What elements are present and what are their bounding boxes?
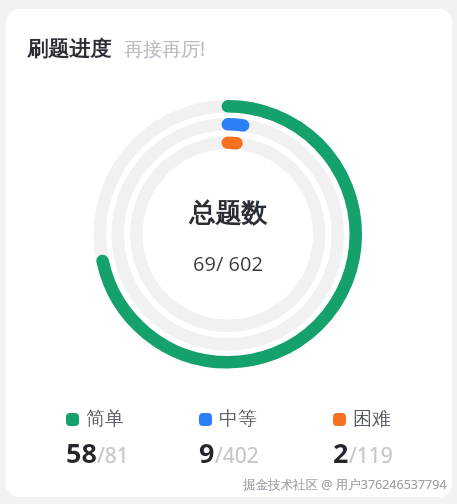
button[interactable]: 中等 — [199, 407, 259, 471]
button[interactable]: 简单 — [66, 407, 129, 471]
staticText: /81 — [97, 441, 129, 470]
staticText: 9 — [199, 434, 215, 471]
staticText: 再接再厉! — [124, 36, 206, 62]
staticText: 总题数 — [189, 197, 267, 230]
staticText: /402 — [215, 441, 259, 470]
staticText: 刷题进度 — [27, 36, 111, 62]
staticText: 69/ 602 — [193, 250, 263, 277]
staticText: /119 — [349, 441, 393, 470]
button[interactable]: 困难 — [333, 407, 393, 471]
button[interactable]: 刷题进度 — [6, 9, 452, 497]
staticText: 58 — [66, 434, 97, 471]
staticText: 掘金技术社区 @ 用户376246537794 — [243, 476, 447, 493]
staticText: 2 — [333, 434, 349, 471]
staticText: 简单 — [86, 407, 124, 431]
staticText: 困难 — [353, 407, 391, 431]
staticText: 中等 — [219, 407, 257, 431]
